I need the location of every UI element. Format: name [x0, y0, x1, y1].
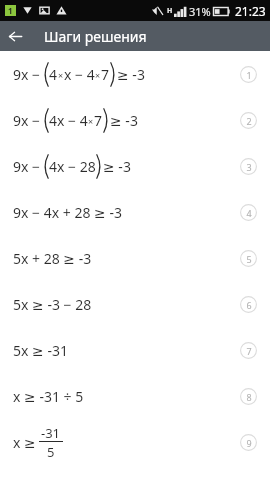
- staticText: ≥ -3: [117, 65, 145, 84]
- staticText: ×: [58, 69, 64, 81]
- button[interactable]: 5x ≥ -31: [0, 327, 270, 373]
- staticText: 9x − 4x + 28 ≥ -3: [13, 203, 122, 222]
- staticText: 1: [8, 5, 13, 16]
- staticText: 5x ≥ -31: [13, 341, 68, 360]
- staticText: 7: [94, 111, 103, 130]
- staticText: 2: [246, 115, 252, 127]
- staticText: 9: [246, 437, 252, 449]
- button[interactable]: 9x −: [0, 51, 270, 97]
- staticText: 4: [246, 207, 252, 219]
- staticText: 9x −: [13, 157, 41, 176]
- button[interactable]: 9x − 4x + 28 ≥ -3: [0, 189, 270, 235]
- staticText: 3: [246, 161, 252, 173]
- staticText: ≥ -3: [110, 111, 138, 130]
- staticText: -31: [41, 424, 61, 442]
- staticText: 4x − 4: [49, 111, 88, 130]
- button[interactable]: 5x ≥ -3 − 28: [0, 281, 270, 327]
- staticText: 6: [246, 299, 252, 311]
- staticText: 5x ≥ -3 − 28: [13, 295, 92, 314]
- button[interactable]: x ≥ -31 ÷ 5: [0, 373, 270, 419]
- staticText: 5: [246, 253, 252, 265]
- staticText: 5x + 28 ≥ -3: [13, 249, 92, 268]
- staticText: 5: [47, 443, 55, 461]
- button[interactable]: 9x −: [0, 143, 270, 189]
- button[interactable]: Back: [0, 21, 30, 51]
- staticText: 7: [246, 345, 252, 357]
- staticText: x ≥ -31 ÷ 5: [13, 387, 84, 406]
- staticText: ×: [88, 115, 94, 127]
- staticText: ≥ -3: [103, 157, 131, 176]
- staticText: 9x −: [13, 65, 41, 84]
- staticText: 9x −: [13, 111, 41, 130]
- staticText: Шаги решения: [44, 27, 147, 46]
- staticText: 4: [49, 65, 58, 84]
- staticText: 31%: [189, 4, 211, 19]
- staticText: x ≥: [13, 433, 36, 452]
- staticText: 8: [246, 391, 252, 403]
- button[interactable]: 5x + 28 ≥ -3: [0, 235, 270, 281]
- button[interactable]: 9x −: [0, 97, 270, 143]
- staticText: x − 4: [64, 65, 95, 84]
- staticText: 1: [246, 69, 252, 81]
- staticText: ×: [95, 69, 101, 81]
- staticText: 7: [101, 65, 110, 84]
- staticText: 4x − 28: [49, 157, 96, 176]
- staticText: H: [167, 6, 173, 16]
- button[interactable]: x ≥: [0, 419, 270, 465]
- staticText: 21:23: [235, 3, 266, 19]
